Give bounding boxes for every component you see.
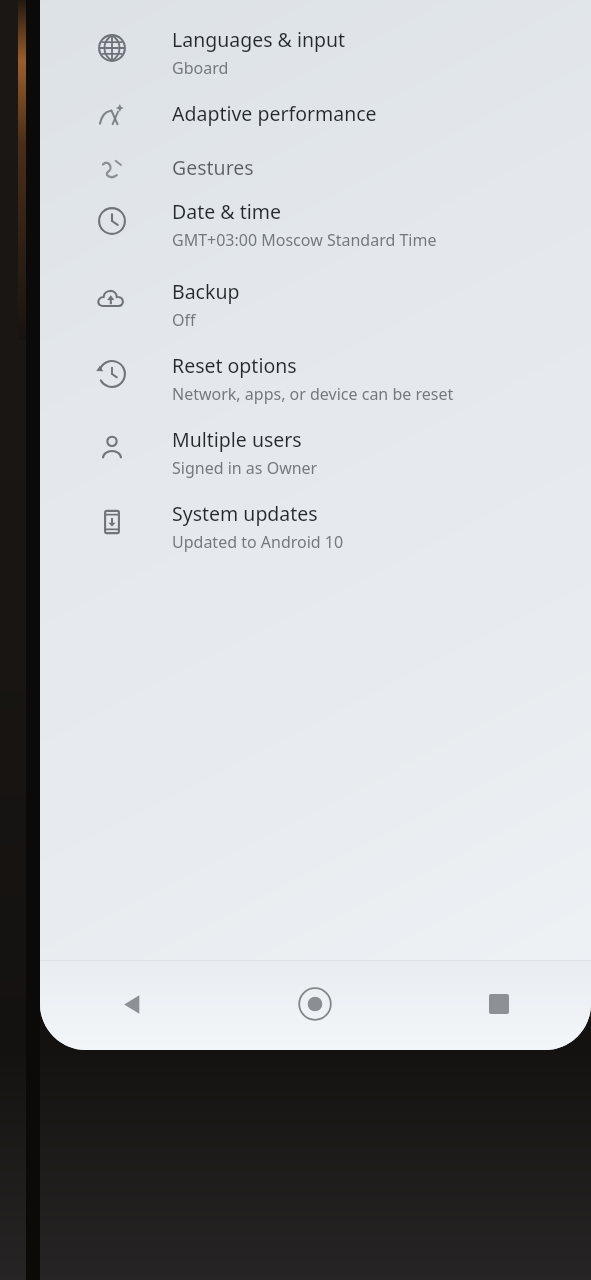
staticText: Network, apps, or device can be reset: [172, 383, 454, 405]
staticText: Adaptive performance: [172, 100, 377, 127]
staticText: Backup: [172, 278, 240, 305]
staticText: Gboard: [172, 57, 229, 79]
button[interactable]: Home: [223, 978, 407, 1030]
staticText: Off: [172, 309, 196, 331]
staticText: GMT+03:00 Moscow Standard Time: [172, 229, 437, 251]
staticText: Updated to Android 10: [172, 531, 344, 553]
staticText: Signed in as Owner: [172, 457, 318, 479]
button[interactable]: Multiple users: [40, 408, 591, 482]
button[interactable]: Backup: [40, 260, 591, 334]
button[interactable]: Languages & input: [40, 0, 591, 74]
staticText: Gestures: [172, 154, 254, 181]
staticText: Multiple users: [172, 426, 302, 453]
button[interactable]: Recent apps: [407, 978, 591, 1030]
button[interactable]: Gestures: [40, 130, 591, 186]
staticText: Languages & input: [172, 26, 346, 53]
button[interactable]: System updates: [40, 482, 591, 556]
staticText: System updates: [172, 500, 318, 527]
button[interactable]: Adaptive performance: [40, 74, 591, 130]
button[interactable]: Reset options: [40, 334, 591, 408]
button[interactable]: Back: [40, 978, 223, 1030]
staticText: Date & time: [172, 198, 281, 225]
staticText: Reset options: [172, 352, 297, 379]
button[interactable]: Date & time: [40, 186, 591, 260]
